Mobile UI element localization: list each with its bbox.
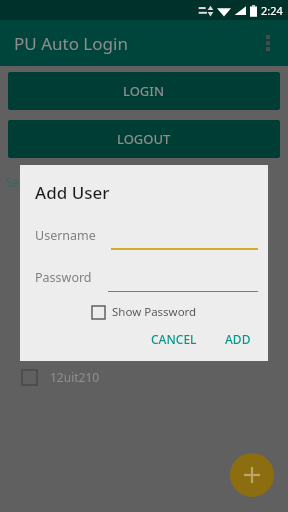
staticText: Username [35,227,96,244]
staticText: LOGIN [123,82,165,100]
staticText: Select user [6,174,68,190]
staticText: PU Auto Login [14,32,128,55]
staticText: CANCEL [151,331,197,347]
button[interactable]: Show Password [92,301,197,323]
staticText: 12uit210 [50,369,100,385]
button[interactable]: Username [35,220,258,250]
button[interactable]: More options [248,23,288,63]
button[interactable]: CANCEL [142,325,206,353]
button[interactable]: Add user [230,453,274,497]
button[interactable]: ADD [216,325,260,353]
staticText: LOGOUT [117,130,171,148]
button[interactable]: Password [35,262,258,292]
button[interactable]: LOGOUT [8,120,280,158]
staticText: Show Password [112,304,197,320]
staticText: 2:24 [261,3,283,18]
staticText: Add User [35,181,110,204]
button[interactable]: LOGIN [8,72,280,110]
staticText: Password [35,269,92,286]
button[interactable]: 12uit210 [0,364,288,390]
staticText: ADD [225,331,251,347]
